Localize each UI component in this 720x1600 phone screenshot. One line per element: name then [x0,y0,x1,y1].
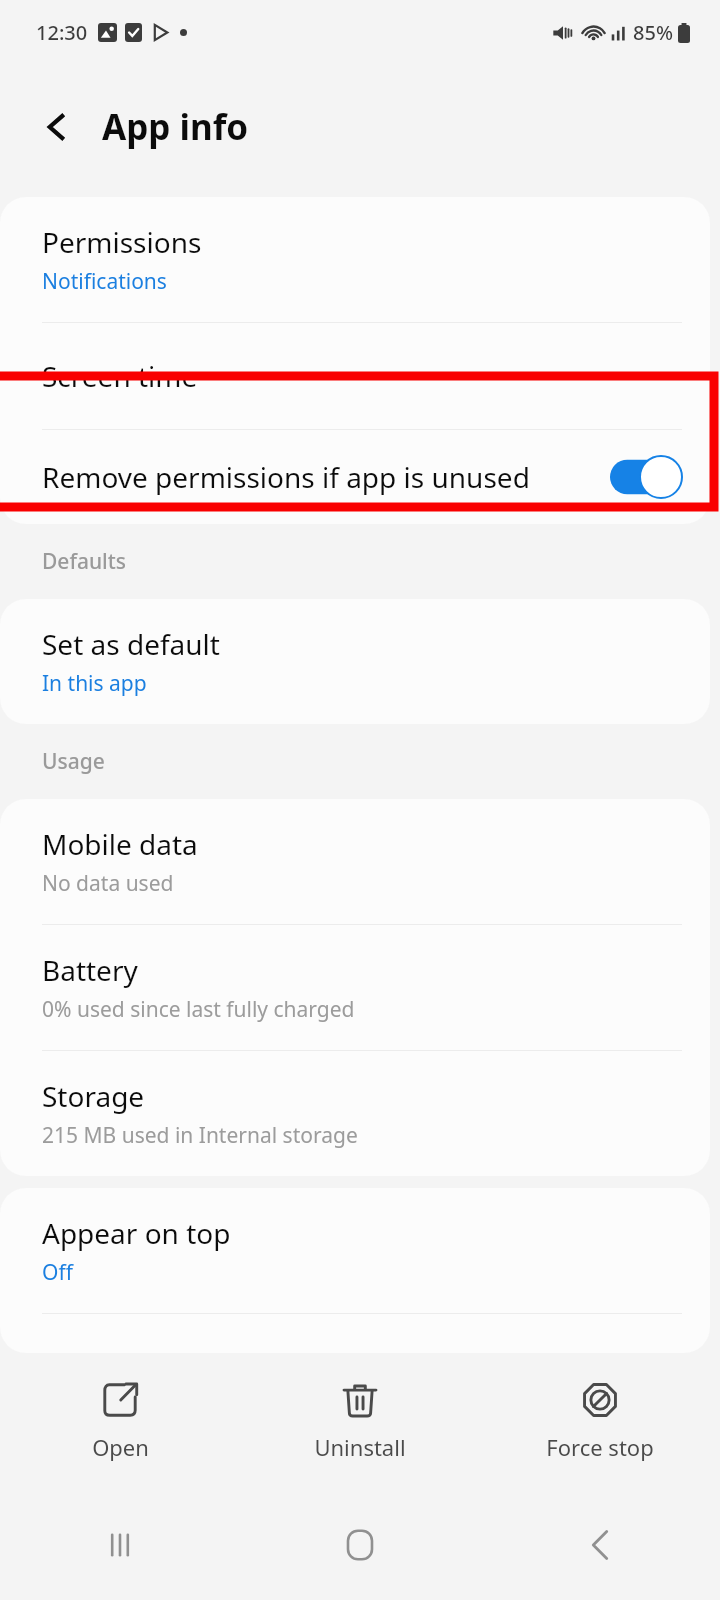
staticText: Screen time [42,357,198,395]
staticText: Mobile data [42,825,198,863]
staticText: Remove permissions if app is unused [42,458,570,496]
staticText: App info [102,103,249,151]
staticText: Usage [42,747,105,776]
staticText: Notifications [42,267,167,296]
staticText: Storage [42,1077,145,1115]
staticText: 12:30 [36,19,88,46]
staticText: No data used [42,869,174,898]
button[interactable]: Recents [0,1490,240,1600]
staticText: Defaults [42,547,126,576]
button[interactable]: Uninstall [240,1353,480,1490]
button[interactable]: Screen time [0,323,710,429]
button[interactable]: Open [0,1353,240,1490]
staticText: Open [92,1432,149,1462]
staticText: 85% [633,19,673,46]
button[interactable]: Mobile data [0,799,710,924]
button[interactable]: Back [480,1490,720,1600]
staticText: Battery [42,951,138,989]
button[interactable]: Back [26,96,88,158]
staticText: Force stop [546,1432,654,1462]
staticText: Off [42,1258,73,1287]
staticText: 215 MB used in Internal storage [42,1121,358,1150]
staticText: Permissions [42,223,202,261]
staticText: Appear on top [42,1214,231,1252]
button[interactable]: Force stop [480,1353,720,1490]
button[interactable]: Permissions [0,197,710,322]
button[interactable]: Appear on top [0,1188,710,1313]
button[interactable]: Set as default [0,599,710,724]
button[interactable]: Remove permissions if app is unused [0,430,710,524]
button[interactable]: Home [240,1490,480,1600]
staticText: 0% used since last fully charged [42,995,355,1024]
button[interactable]: Battery [0,925,710,1050]
staticText: Set as default [42,625,220,663]
button[interactable]: Storage [0,1051,710,1176]
staticText: Uninstall [314,1432,406,1462]
staticText: In this app [42,669,147,698]
